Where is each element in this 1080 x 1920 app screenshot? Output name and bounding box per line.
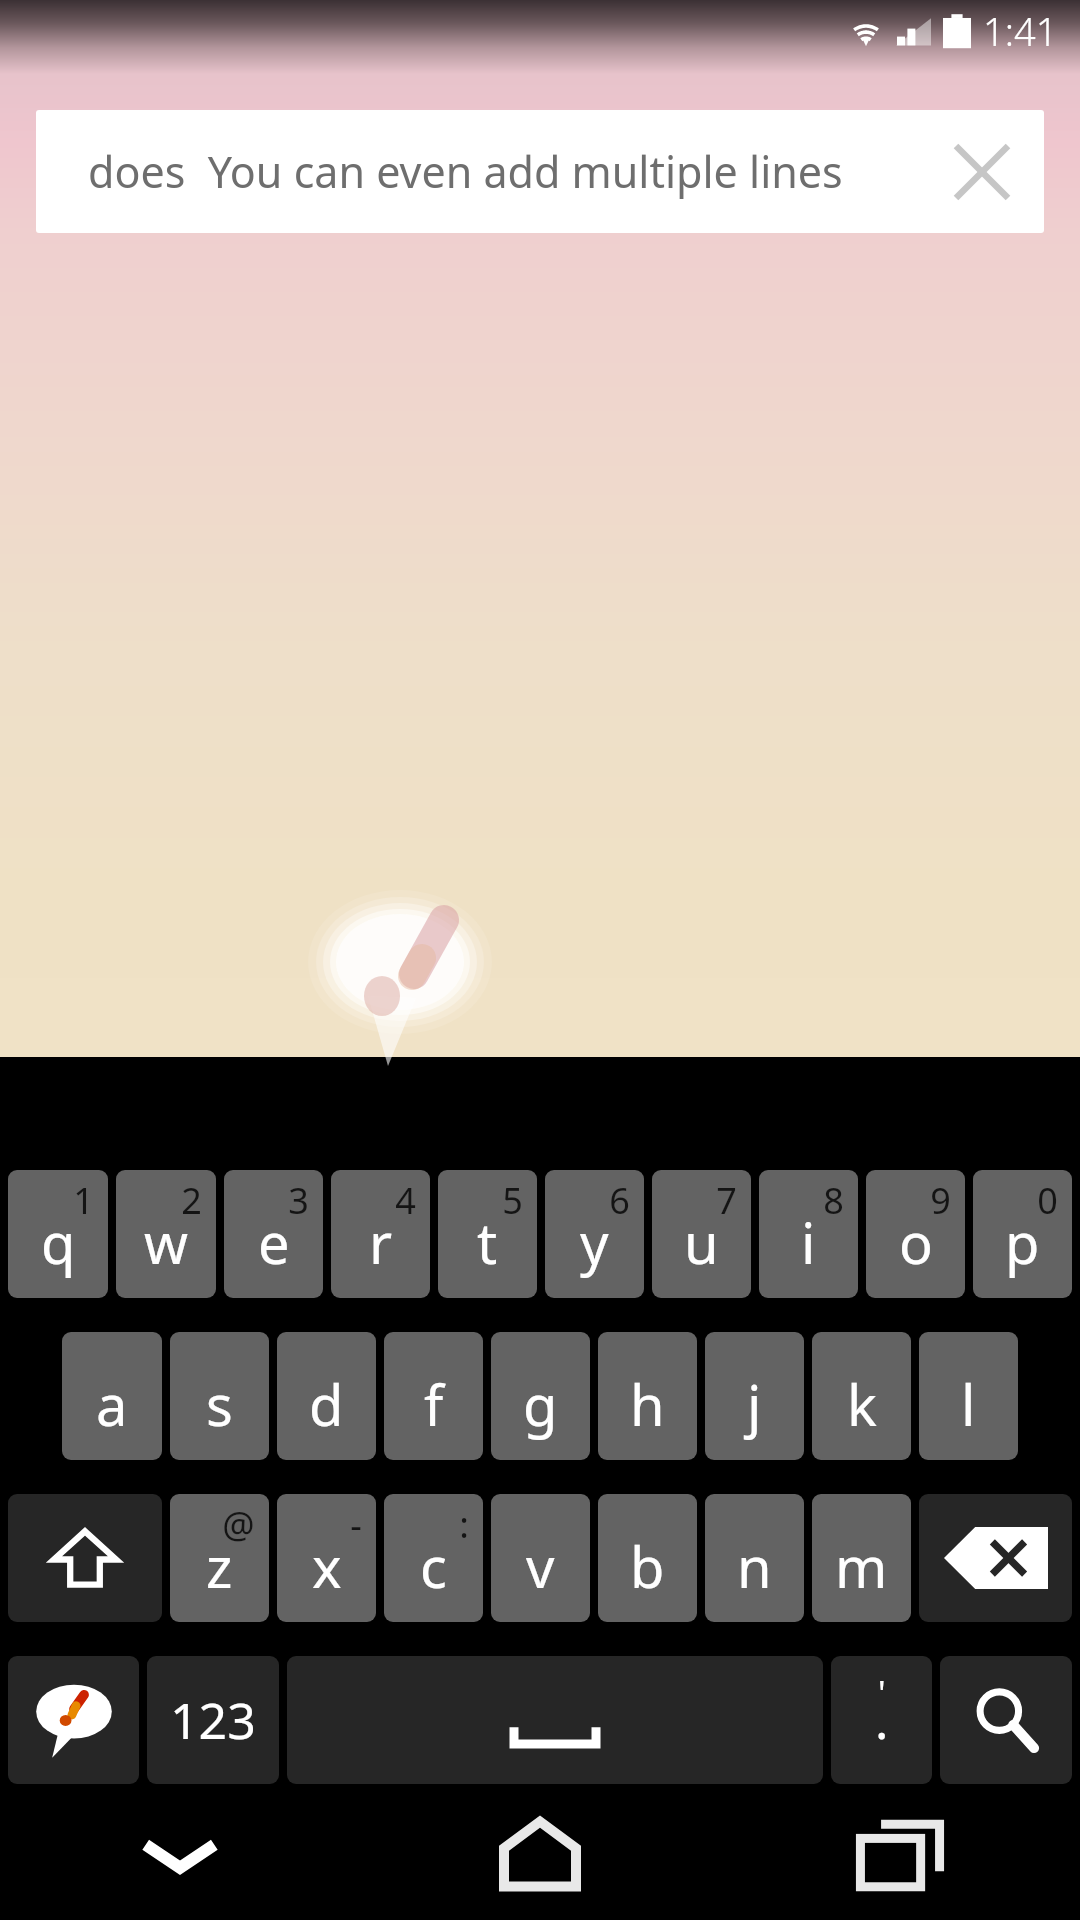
staticText: 1: [73, 1176, 94, 1225]
button[interactable]: b: [598, 1494, 697, 1622]
staticText: w: [144, 1204, 189, 1280]
staticText: a: [96, 1366, 128, 1442]
button[interactable]: d: [277, 1332, 376, 1460]
staticText: 9: [930, 1176, 951, 1225]
button[interactable]: Emoji: [8, 1656, 139, 1784]
staticText: 7: [716, 1176, 737, 1225]
button[interactable]: Clear text: [934, 124, 1030, 220]
button[interactable]: a: [62, 1332, 162, 1460]
staticText: y: [580, 1204, 609, 1280]
staticText: 2: [181, 1176, 202, 1225]
staticText: 1:41: [983, 5, 1058, 57]
button[interactable]: 123: [147, 1656, 279, 1784]
button[interactable]: 4: [331, 1170, 430, 1298]
staticText: 123: [170, 1686, 256, 1754]
staticText: z: [206, 1528, 233, 1604]
button[interactable]: Backspace: [919, 1494, 1072, 1622]
staticText: d: [309, 1366, 344, 1442]
staticText: s: [206, 1366, 233, 1442]
button[interactable]: ': [831, 1656, 932, 1784]
button[interactable]: :: [384, 1494, 483, 1622]
staticText: :: [459, 1500, 469, 1549]
staticText: n: [737, 1528, 772, 1604]
staticText: 5: [502, 1176, 523, 1225]
staticText: j: [747, 1366, 762, 1442]
staticText: 0: [1037, 1176, 1058, 1225]
staticText: does You can even add multiple lines: [88, 142, 843, 201]
button[interactable]: 6: [545, 1170, 644, 1298]
staticText: l: [961, 1366, 976, 1442]
button[interactable]: j: [705, 1332, 804, 1460]
button[interactable]: f: [384, 1332, 483, 1460]
staticText: e: [258, 1204, 290, 1280]
staticText: t: [477, 1204, 498, 1280]
staticText: v: [526, 1528, 555, 1604]
button[interactable]: Shift: [8, 1494, 162, 1622]
staticText: x: [312, 1528, 342, 1604]
staticText: u: [684, 1204, 719, 1280]
button[interactable]: Space: [287, 1656, 823, 1784]
button[interactable]: g: [491, 1332, 590, 1460]
button[interactable]: n: [705, 1494, 804, 1622]
button[interactable]: 3: [224, 1170, 323, 1298]
button[interactable]: m: [812, 1494, 911, 1622]
staticText: 3: [288, 1176, 309, 1225]
staticText: 6: [609, 1176, 630, 1225]
button[interactable]: k: [812, 1332, 911, 1460]
staticText: r: [369, 1204, 393, 1280]
button[interactable]: h: [598, 1332, 697, 1460]
button[interactable]: 9: [866, 1170, 965, 1298]
button[interactable]: 7: [652, 1170, 751, 1298]
staticText: f: [424, 1366, 444, 1442]
button[interactable]: Home: [360, 1788, 720, 1920]
staticText: 4: [395, 1176, 416, 1225]
staticText: .: [875, 1686, 889, 1754]
staticText: g: [523, 1366, 558, 1442]
button[interactable]: 5: [438, 1170, 537, 1298]
staticText: q: [41, 1204, 76, 1280]
button[interactable]: Search: [940, 1656, 1072, 1784]
button[interactable]: Hide keyboard: [0, 1788, 360, 1920]
button[interactable]: l: [919, 1332, 1018, 1460]
button[interactable]: 2: [116, 1170, 216, 1298]
staticText: c: [420, 1528, 447, 1604]
staticText: m: [835, 1528, 888, 1604]
button[interactable]: 0: [973, 1170, 1072, 1298]
staticText: o: [899, 1204, 933, 1280]
staticText: b: [630, 1528, 665, 1604]
button[interactable]: s: [170, 1332, 269, 1460]
button[interactable]: 1: [8, 1170, 108, 1298]
button[interactable]: -: [277, 1494, 376, 1622]
button[interactable]: does You can even add multiple lines: [36, 110, 1044, 233]
staticText: ': [878, 1670, 886, 1716]
staticText: h: [630, 1366, 665, 1442]
staticText: i: [801, 1204, 816, 1280]
button[interactable]: Recent apps: [720, 1788, 1080, 1920]
staticText: p: [1005, 1204, 1040, 1280]
staticText: @: [222, 1500, 255, 1549]
button[interactable]: 8: [759, 1170, 858, 1298]
button[interactable]: v: [491, 1494, 590, 1622]
staticText: 8: [823, 1176, 844, 1225]
staticText: k: [847, 1366, 877, 1442]
staticText: -: [350, 1500, 362, 1549]
button[interactable]: @: [170, 1494, 269, 1622]
